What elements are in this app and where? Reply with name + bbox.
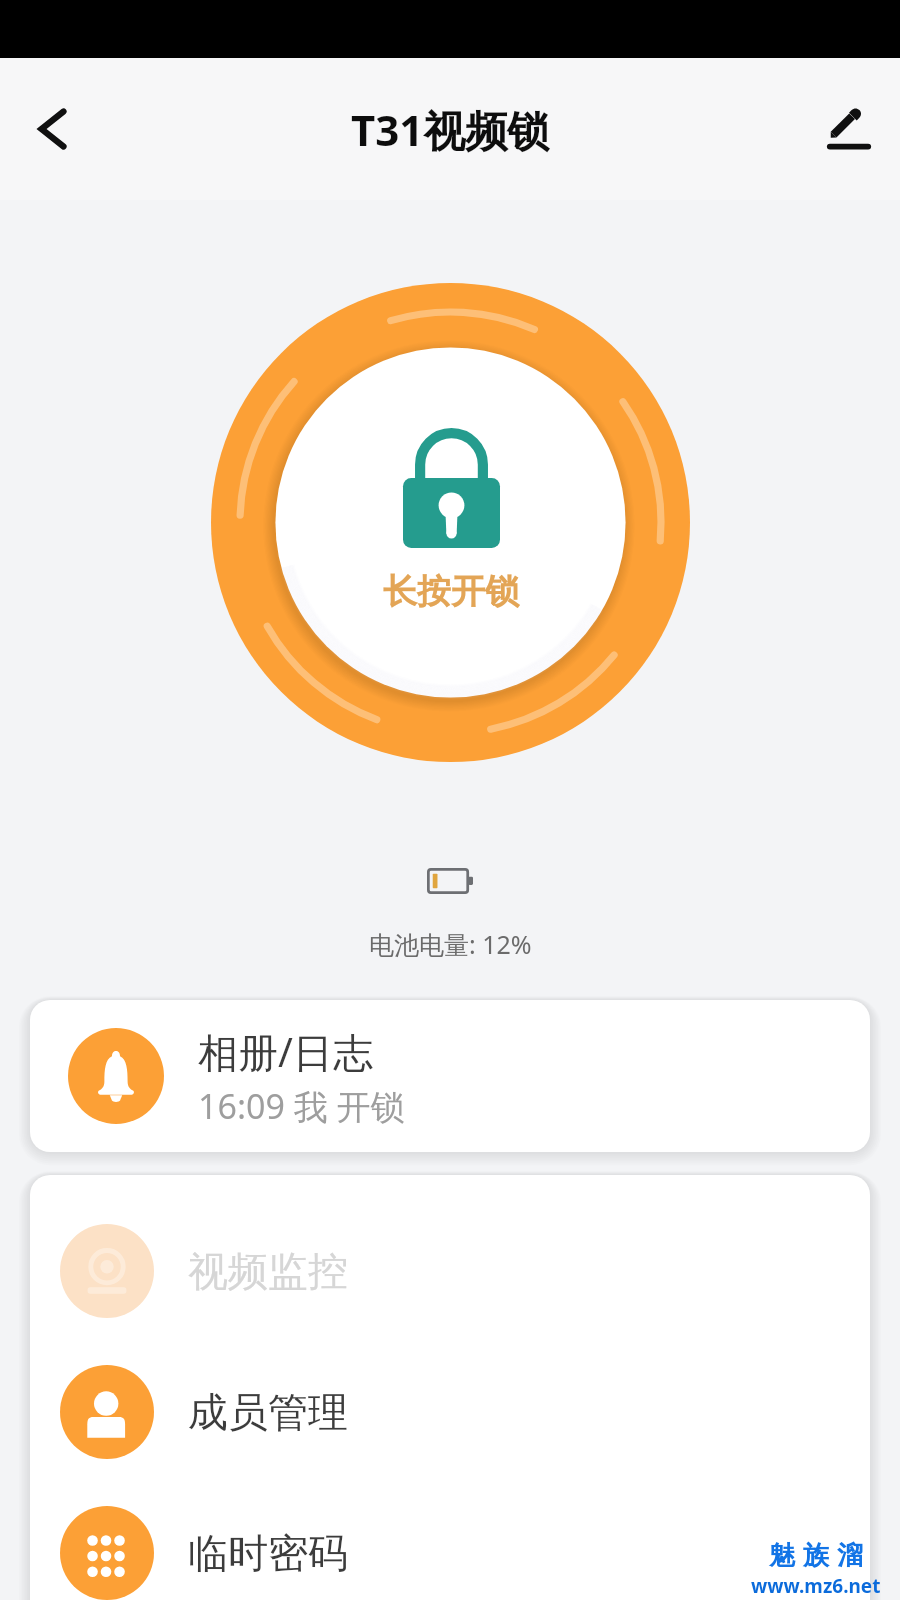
staticText: 成员管理 bbox=[188, 1387, 348, 1437]
staticText: 视频监控 bbox=[188, 1246, 348, 1296]
button[interactable]: 成员管理 bbox=[30, 1341, 870, 1482]
button[interactable]: Edit bbox=[813, 93, 885, 165]
staticText: www.mz6.net bbox=[751, 1573, 881, 1599]
button[interactable]: 相册/日志 bbox=[30, 1000, 870, 1152]
staticText: 临时密码 bbox=[188, 1528, 348, 1578]
staticText: T31视频锁 bbox=[351, 101, 550, 158]
staticText: 魅族溜 bbox=[765, 1539, 867, 1572]
staticText: 电池电量: 12% bbox=[369, 927, 532, 961]
button[interactable]: Back bbox=[16, 93, 88, 165]
staticText: 长按开锁 bbox=[383, 570, 519, 613]
button[interactable]: 临时密码 bbox=[30, 1482, 870, 1600]
button[interactable]: 视频监控 bbox=[30, 1200, 870, 1341]
button[interactable]: Long press to unlock bbox=[211, 283, 690, 762]
staticText: 相册/日志 bbox=[198, 1024, 373, 1079]
staticText: 16:09 我 开锁 bbox=[198, 1083, 405, 1129]
